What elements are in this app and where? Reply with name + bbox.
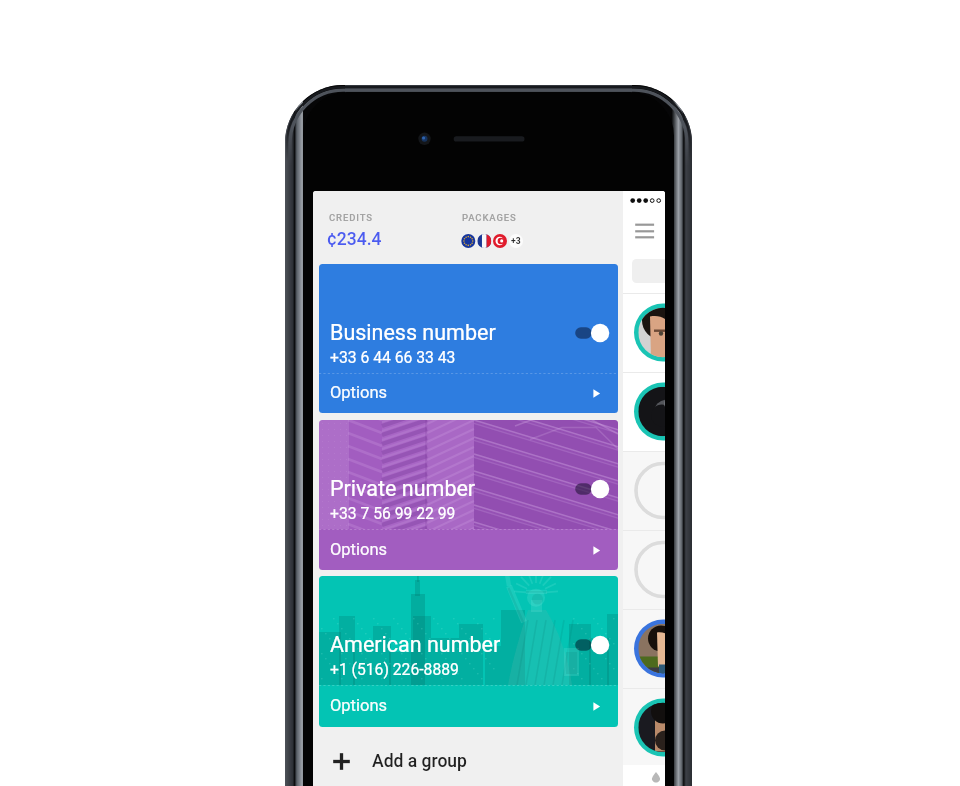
button[interactable]: Toggle Business number <box>569 321 609 345</box>
staticText: Business number <box>330 320 496 345</box>
staticText: Private number <box>330 476 476 501</box>
staticText: +33 6 44 66 33 43 <box>330 348 456 366</box>
button[interactable]: Contact <box>623 293 665 372</box>
staticText: +1 (516) 226-8889 <box>330 660 459 678</box>
staticText: +33 7 56 99 22 99 <box>330 504 456 522</box>
button[interactable]: Options <box>319 374 618 413</box>
staticText: American number <box>330 632 501 657</box>
button[interactable]: Add a group <box>313 736 623 786</box>
button[interactable]: Options <box>319 686 618 727</box>
staticText: Options <box>330 383 388 402</box>
button[interactable]: Toggle American number <box>569 633 609 657</box>
button[interactable]: Contact <box>623 688 665 767</box>
button[interactable]: Contact <box>623 451 665 530</box>
staticText: Options <box>330 696 388 715</box>
staticText: ¢234.4 <box>327 229 382 250</box>
button[interactable]: Contact <box>623 609 665 688</box>
staticText: Add a group <box>372 751 467 772</box>
button[interactable]: Contact <box>623 530 665 609</box>
staticText: PACKAGES <box>462 212 517 223</box>
staticText: CREDITS <box>329 212 373 223</box>
button[interactable]: Contact <box>623 372 665 451</box>
staticText: +3 <box>511 236 521 246</box>
button[interactable]: Packages <box>461 233 523 249</box>
button[interactable]: Options <box>319 530 618 570</box>
staticText: Options <box>330 540 388 559</box>
button[interactable]: Toggle Private number <box>569 477 609 501</box>
